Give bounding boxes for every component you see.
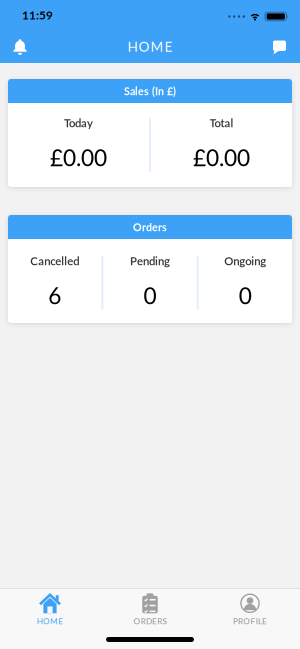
staticText: 0 — [143, 282, 156, 309]
staticText: £0.00 — [193, 144, 250, 171]
staticText: Today — [64, 116, 93, 130]
staticText: Pending — [130, 254, 170, 268]
staticText: Orders — [133, 221, 167, 233]
staticText: Cancelled — [30, 254, 79, 268]
staticText: HOME — [37, 616, 63, 626]
staticText: 11:59 — [22, 8, 53, 22]
button[interactable]: HOME — [0, 589, 100, 626]
staticText: ORDERS — [133, 616, 166, 626]
staticText: Sales (In £) — [124, 85, 176, 97]
button[interactable]: PROFILE — [200, 589, 300, 626]
staticText: Total — [209, 116, 233, 130]
staticText: 6 — [48, 282, 61, 309]
staticText: Ongoing — [224, 254, 266, 268]
staticText: PROFILE — [233, 616, 267, 626]
staticText: £0.00 — [50, 144, 107, 171]
button[interactable]: Notifications — [0, 30, 27, 63]
staticText: HOME — [127, 38, 172, 55]
button[interactable]: ORDERS — [100, 589, 200, 626]
button[interactable]: Messages — [273, 31, 300, 61]
staticText: 0 — [239, 282, 252, 309]
